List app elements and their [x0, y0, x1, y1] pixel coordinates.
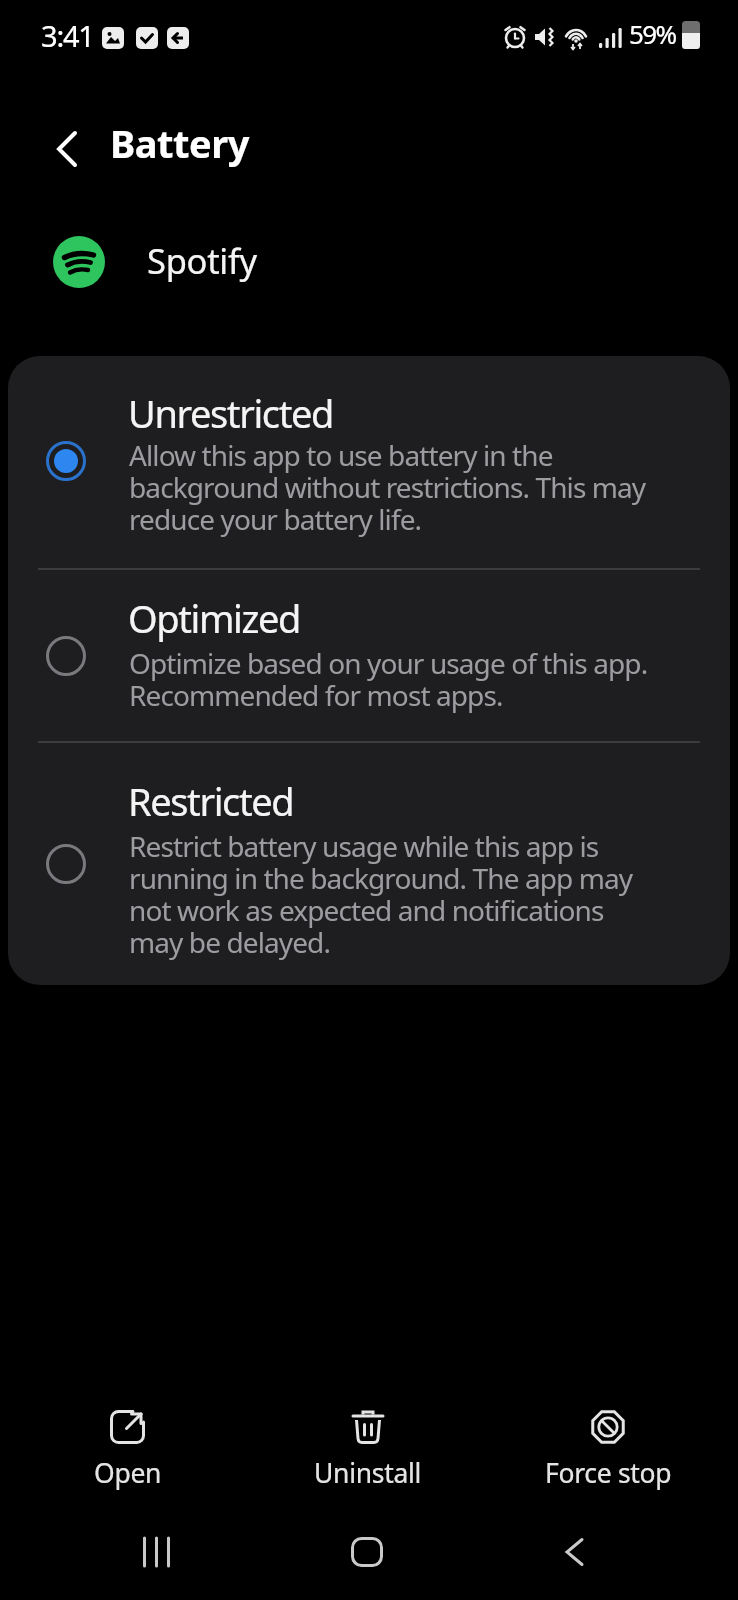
button[interactable] — [8, 356, 730, 568]
staticText: Open — [94, 1455, 162, 1491]
staticText: 59% — [629, 16, 676, 51]
button[interactable] — [278, 1398, 458, 1498]
staticText: Uninstall — [314, 1455, 422, 1491]
staticText: Optimized — [128, 592, 300, 644]
staticText: 3:41 — [41, 16, 94, 55]
staticText: Restricted — [128, 775, 294, 827]
staticText: Force stop — [545, 1455, 672, 1491]
button[interactable] — [44, 126, 92, 174]
staticText: Spotify — [147, 237, 257, 284]
staticText: Unrestricted — [128, 387, 334, 439]
button[interactable] — [125, 1520, 195, 1584]
button[interactable] — [518, 1398, 698, 1498]
staticText: Restrict battery usage while this app is… — [129, 827, 633, 961]
button[interactable] — [541, 1520, 611, 1584]
button[interactable] — [38, 1398, 218, 1498]
staticText: Battery — [110, 117, 249, 169]
button[interactable] — [333, 1520, 403, 1584]
staticText: Optimize based on your usage of this app… — [129, 644, 648, 714]
staticText: Allow this app to use battery in the bac… — [129, 436, 646, 538]
